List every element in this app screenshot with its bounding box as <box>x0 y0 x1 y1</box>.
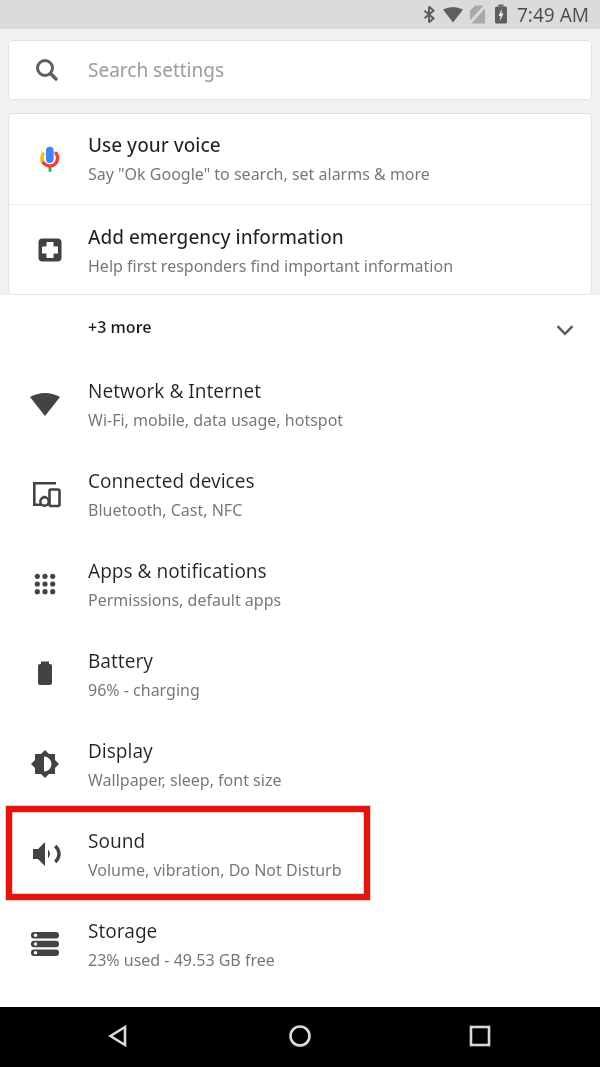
button[interactable]: Display <box>0 719 600 809</box>
staticText: Wallpaper, sleep, font size <box>88 769 282 791</box>
staticText: Volume, vibration, Do Not Disturb <box>88 859 342 881</box>
staticText: Network & Internet <box>88 378 262 404</box>
button[interactable]: Connected devices <box>0 449 600 539</box>
staticText: Use your voice <box>88 132 221 158</box>
staticText: Help first responders find important inf… <box>88 255 454 277</box>
staticText: Permissions, default apps <box>88 589 282 611</box>
staticText: 7:49 AM <box>517 2 590 28</box>
staticText: Wi-Fi, mobile, data usage, hotspot <box>88 409 344 431</box>
button[interactable]: Use your voice <box>8 113 592 204</box>
staticText: +3 more <box>88 316 152 338</box>
button[interactable]: Network & Internet <box>0 359 600 449</box>
staticText: Say "Ok Google" to search, set alarms & … <box>88 163 430 185</box>
staticText: Connected devices <box>88 468 255 494</box>
staticText: Search settings <box>88 57 225 83</box>
button[interactable]: Storage <box>0 899 600 989</box>
button[interactable]: Apps & notifications <box>0 539 600 629</box>
staticText: Apps & notifications <box>88 558 267 584</box>
staticText: Bluetooth, Cast, NFC <box>88 499 243 521</box>
button[interactable]: Search settings <box>8 40 592 100</box>
staticText: 23% used - 49.53 GB free <box>88 949 275 971</box>
staticText: Sound <box>88 828 146 854</box>
button[interactable]: +3 more <box>0 295 600 359</box>
staticText: 96% - charging <box>88 679 200 701</box>
button[interactable] <box>456 1013 504 1061</box>
staticText: Battery <box>88 648 153 674</box>
staticText: Storage <box>88 918 158 944</box>
button[interactable]: Sound <box>0 809 600 899</box>
button[interactable] <box>96 1013 144 1061</box>
button[interactable]: Add emergency information <box>8 205 592 295</box>
staticText: Display <box>88 738 153 764</box>
button[interactable]: Battery <box>0 629 600 719</box>
staticText: Add emergency information <box>88 224 344 250</box>
button[interactable] <box>276 1013 324 1061</box>
